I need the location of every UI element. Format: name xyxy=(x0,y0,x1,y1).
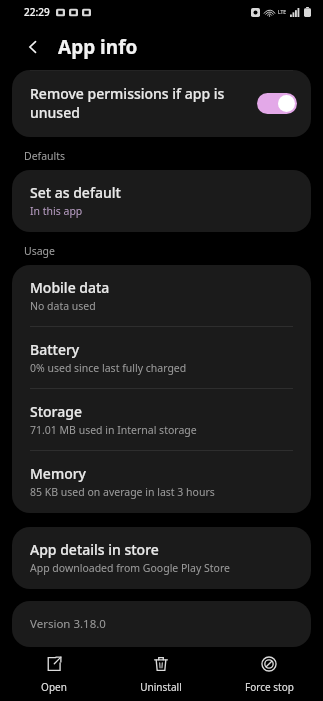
staticText: Version 3.18.0 xyxy=(30,616,106,632)
staticText: Force stop xyxy=(245,680,294,694)
staticText: App info xyxy=(58,34,138,60)
staticText: Storage xyxy=(30,402,82,421)
button[interactable]: Memory xyxy=(12,451,311,513)
staticText: 22:29 xyxy=(24,5,50,19)
staticText: Defaults xyxy=(24,149,66,163)
button[interactable]: Remove permissions toggle xyxy=(257,93,297,114)
button[interactable]: App details in store xyxy=(12,527,311,589)
button[interactable]: Uninstall xyxy=(107,648,215,700)
staticText: No data used xyxy=(30,299,96,313)
button[interactable]: Force stop xyxy=(215,648,323,700)
staticText: 0% used since last fully charged xyxy=(30,361,187,375)
button[interactable]: Mobile data xyxy=(12,265,311,326)
staticText: Mobile data xyxy=(30,278,110,297)
button[interactable]: Back xyxy=(18,32,48,62)
staticText: 85 KB used on average in last 3 hours xyxy=(30,485,215,499)
staticText: 71.01 MB used in Internal storage xyxy=(30,423,197,437)
staticText: Set as default xyxy=(30,183,121,202)
button[interactable]: Storage xyxy=(12,389,311,450)
staticText: Memory xyxy=(30,464,87,483)
staticText: Usage xyxy=(24,244,55,258)
button[interactable]: Version 3.18.0 xyxy=(12,601,311,647)
staticText: Remove permissions if app is unused xyxy=(30,84,245,122)
staticText: In this app xyxy=(30,204,83,218)
staticText: LTE xyxy=(278,9,287,16)
staticText: App downloaded from Google Play Store xyxy=(30,561,231,575)
button[interactable]: Open xyxy=(0,648,107,700)
staticText: Battery xyxy=(30,340,80,359)
staticText: Open xyxy=(41,680,67,694)
button[interactable]: Set as default xyxy=(12,170,311,232)
staticText: Uninstall xyxy=(140,680,182,694)
button[interactable]: Battery xyxy=(12,327,311,388)
button[interactable]: Remove permissions if app is unused xyxy=(12,71,311,137)
staticText: App details in store xyxy=(30,540,159,559)
